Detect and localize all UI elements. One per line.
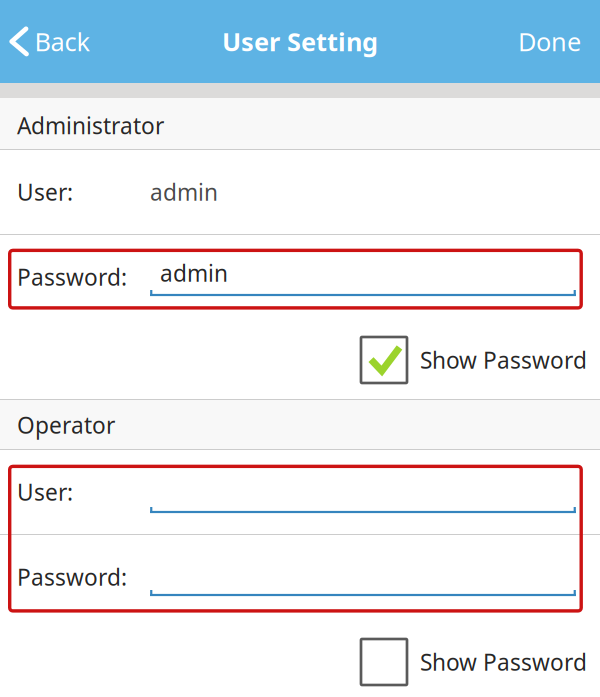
button[interactable]: User: <box>0 150 600 234</box>
staticText: Administrator <box>17 110 164 140</box>
staticText: admin <box>150 177 218 207</box>
button[interactable]: Show Password <box>0 619 600 697</box>
staticText: User: <box>17 477 73 507</box>
staticText: Operator <box>17 410 115 440</box>
staticText: Done <box>518 25 581 58</box>
staticText: User Setting <box>222 25 378 58</box>
button[interactable]: User: <box>0 450 600 534</box>
staticText: admin <box>160 258 228 288</box>
button[interactable]: Back <box>0 0 102 83</box>
staticText: Show Password <box>420 345 587 375</box>
staticText: Password: <box>17 562 127 592</box>
staticText: Back <box>34 25 90 58</box>
button[interactable]: Show Password <box>0 308 600 399</box>
button[interactable]: Password: <box>0 235 600 308</box>
staticText: Password: <box>17 262 127 292</box>
staticText: User: <box>17 177 73 207</box>
button[interactable]: Password: <box>0 535 600 619</box>
staticText: Show Password <box>420 647 587 677</box>
button[interactable]: Done <box>504 0 600 83</box>
